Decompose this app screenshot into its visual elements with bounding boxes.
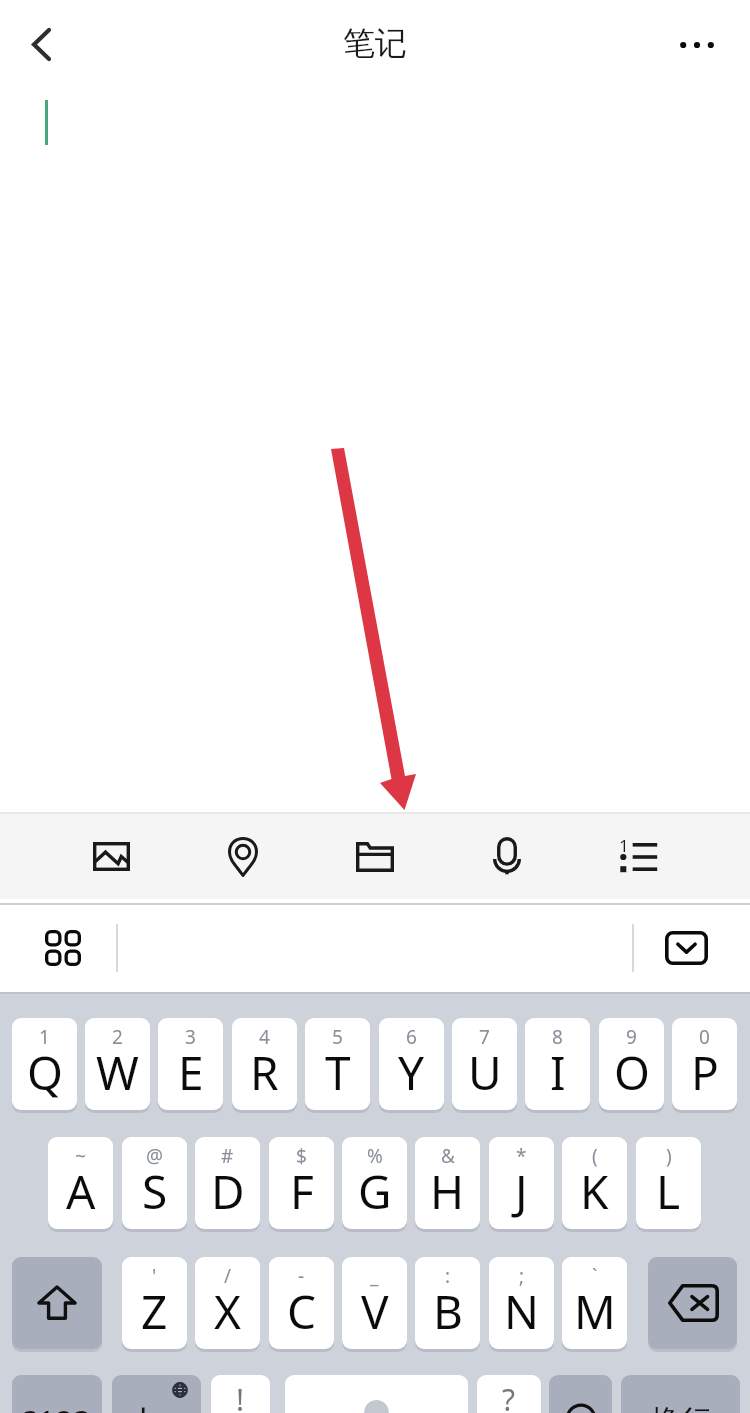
staticText: @ bbox=[146, 1143, 164, 1169]
staticText: $ bbox=[296, 1143, 307, 1169]
staticText: V bbox=[361, 1280, 389, 1343]
staticText: 4 bbox=[259, 1024, 270, 1050]
staticText: Z bbox=[141, 1280, 168, 1343]
button[interactable]: X bbox=[195, 1257, 260, 1349]
staticText: O bbox=[614, 1041, 650, 1104]
button[interactable]: O bbox=[599, 1018, 664, 1110]
button[interactable]: B bbox=[415, 1257, 480, 1349]
button[interactable]: G bbox=[342, 1137, 407, 1229]
staticText: ` bbox=[592, 1263, 598, 1289]
staticText: I bbox=[550, 1041, 566, 1104]
staticText: U bbox=[468, 1041, 502, 1104]
button[interactable]: Symbols bbox=[12, 1375, 102, 1413]
staticText: 9 bbox=[626, 1024, 637, 1050]
staticText: - bbox=[298, 1263, 305, 1289]
button[interactable]: R bbox=[232, 1018, 297, 1110]
staticText: W bbox=[96, 1041, 139, 1104]
button[interactable]: Location bbox=[177, 814, 309, 899]
button[interactable]: Enter bbox=[621, 1375, 740, 1413]
button[interactable]: Insert image bbox=[45, 814, 177, 899]
staticText: * bbox=[516, 1143, 527, 1169]
staticText: F bbox=[290, 1160, 314, 1223]
staticText: 2 bbox=[112, 1024, 123, 1050]
button[interactable]: F bbox=[269, 1137, 334, 1229]
button[interactable]: Emoji bbox=[549, 1375, 612, 1413]
staticText: 7 bbox=[479, 1024, 490, 1050]
button[interactable]: V bbox=[342, 1257, 407, 1349]
button[interactable]: E bbox=[158, 1018, 223, 1110]
staticText: # bbox=[221, 1143, 234, 1169]
staticText: E bbox=[178, 1041, 204, 1104]
button[interactable]: Back bbox=[12, 15, 70, 73]
button[interactable]: Files bbox=[309, 814, 441, 899]
button[interactable]: Hide keyboard bbox=[656, 923, 716, 973]
button[interactable]: U bbox=[452, 1018, 517, 1110]
button[interactable]: Shift bbox=[12, 1257, 102, 1349]
staticText: ; bbox=[519, 1263, 525, 1289]
staticText: / bbox=[224, 1263, 232, 1289]
staticText: 笔记 bbox=[0, 23, 750, 63]
staticText: H bbox=[430, 1160, 465, 1223]
button[interactable]: Y bbox=[379, 1018, 444, 1110]
staticText: L bbox=[656, 1160, 681, 1223]
button[interactable]: H bbox=[415, 1137, 480, 1229]
staticText: 中 bbox=[126, 1402, 163, 1413]
button[interactable]: L bbox=[636, 1137, 701, 1229]
staticText: A bbox=[66, 1160, 96, 1223]
staticText: J bbox=[515, 1160, 528, 1223]
button[interactable]: Keyboard layouts bbox=[29, 918, 97, 978]
staticText: D bbox=[211, 1160, 245, 1223]
staticText: 换行 bbox=[650, 1402, 712, 1413]
button[interactable]: Exclamation mark bbox=[211, 1375, 270, 1413]
staticText: R bbox=[250, 1041, 279, 1104]
staticText: P bbox=[691, 1041, 719, 1104]
staticText: T bbox=[325, 1041, 351, 1104]
button[interactable]: Q bbox=[12, 1018, 77, 1110]
button[interactable]: K bbox=[562, 1137, 627, 1229]
button[interactable]: P bbox=[672, 1018, 737, 1110]
staticText: 1 bbox=[39, 1024, 50, 1050]
button[interactable]: Space bbox=[285, 1375, 468, 1413]
staticText: N bbox=[504, 1280, 539, 1343]
button[interactable]: C bbox=[269, 1257, 334, 1349]
staticText: S bbox=[142, 1160, 168, 1223]
staticText: _ bbox=[370, 1263, 379, 1289]
staticText: ~ bbox=[75, 1143, 86, 1169]
staticText: K bbox=[580, 1160, 609, 1223]
staticText: Q bbox=[27, 1041, 63, 1104]
staticText: : bbox=[445, 1263, 451, 1289]
staticText: ! bbox=[236, 1379, 245, 1413]
staticText: M bbox=[574, 1280, 616, 1343]
staticText: 0 bbox=[699, 1024, 710, 1050]
button[interactable]: J bbox=[489, 1137, 554, 1229]
staticText: 8 bbox=[552, 1024, 563, 1050]
button[interactable]: S bbox=[122, 1137, 187, 1229]
staticText: B bbox=[433, 1280, 463, 1343]
button[interactable]: D bbox=[195, 1137, 260, 1229]
staticText: 1 bbox=[619, 834, 629, 857]
button[interactable]: Switch language bbox=[112, 1375, 201, 1413]
staticText: 5 bbox=[332, 1024, 343, 1050]
button[interactable]: A bbox=[48, 1137, 113, 1229]
staticText: 6 bbox=[406, 1024, 417, 1050]
button[interactable]: M bbox=[562, 1257, 627, 1349]
staticText: Y bbox=[398, 1041, 425, 1104]
button[interactable]: Z bbox=[122, 1257, 187, 1349]
staticText: ( bbox=[592, 1143, 598, 1169]
button[interactable]: More options bbox=[668, 16, 726, 74]
staticText: ?123 bbox=[24, 1400, 91, 1413]
button[interactable]: Question mark bbox=[477, 1375, 541, 1413]
button[interactable]: I bbox=[525, 1018, 590, 1110]
button[interactable]: W bbox=[85, 1018, 150, 1110]
button[interactable]: Backspace bbox=[648, 1257, 737, 1349]
button[interactable]: Checklist bbox=[573, 814, 705, 899]
staticText: 3 bbox=[185, 1024, 196, 1050]
staticText: & bbox=[441, 1143, 455, 1169]
staticText: G bbox=[358, 1160, 392, 1223]
staticText: X bbox=[214, 1280, 241, 1343]
staticText: ' bbox=[152, 1263, 157, 1289]
button[interactable]: N bbox=[489, 1257, 554, 1349]
staticText: ? bbox=[502, 1379, 516, 1413]
button[interactable]: T bbox=[305, 1018, 370, 1110]
button[interactable]: Voice input bbox=[441, 814, 573, 899]
